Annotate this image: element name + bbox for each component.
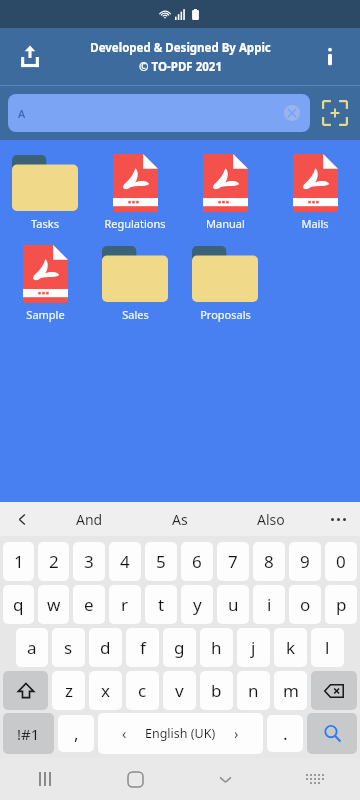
button[interactable]: Recents <box>0 758 90 800</box>
button[interactable]: Tasks <box>0 146 90 237</box>
staticText: j <box>251 636 256 659</box>
button[interactable]: Also <box>225 502 316 536</box>
button[interactable]: Search <box>307 713 357 754</box>
button[interactable]: Home <box>90 758 180 800</box>
button[interactable]: i <box>253 585 285 624</box>
staticText: !#1 <box>17 724 40 744</box>
button[interactable]: v <box>163 671 196 710</box>
button[interactable]: Proposals <box>180 237 270 328</box>
staticText: t <box>158 593 165 616</box>
button[interactable]: 7 <box>217 542 249 581</box>
staticText: v <box>175 679 184 702</box>
button[interactable]: d <box>89 628 122 667</box>
button[interactable]: z <box>52 671 85 710</box>
button[interactable]: Hide keyboard <box>180 758 270 800</box>
button[interactable]: Manual <box>180 146 270 237</box>
staticText: b <box>211 679 222 702</box>
button[interactable]: g <box>163 628 196 667</box>
staticText: z <box>65 679 73 702</box>
staticText: English (UK) <box>145 725 216 742</box>
button[interactable]: b <box>200 671 233 710</box>
button[interactable]: Previous suggestions <box>0 502 44 536</box>
staticText: g <box>174 636 185 659</box>
button[interactable]: 6 <box>181 542 213 581</box>
staticText: u <box>228 593 239 616</box>
button[interactable]: y <box>181 585 213 624</box>
staticText: Developed & Designed By Appic <box>90 40 271 56</box>
button[interactable]: Backspace <box>311 671 357 710</box>
staticText: 2 <box>49 550 59 573</box>
staticText: y <box>193 593 202 616</box>
staticText: q <box>13 593 24 616</box>
staticText: Proposals <box>200 307 251 322</box>
button[interactable]: s <box>52 628 85 667</box>
staticText: c <box>138 679 147 702</box>
staticText: ‹ <box>122 724 127 743</box>
staticText: m <box>283 679 299 702</box>
staticText: s <box>64 636 73 659</box>
button[interactable]: w <box>38 585 69 624</box>
button[interactable]: 5 <box>145 542 177 581</box>
button[interactable]: u <box>217 585 249 624</box>
button[interactable]: Regulations <box>90 146 180 237</box>
button[interactable]: A <box>8 94 310 132</box>
staticText: , <box>74 722 79 745</box>
staticText: w <box>47 593 61 616</box>
button[interactable]: 8 <box>253 542 285 581</box>
button[interactable]: !#1 <box>3 713 54 754</box>
button[interactable]: j <box>237 628 270 667</box>
staticText: o <box>300 593 311 616</box>
button[interactable]: Upload <box>8 35 52 79</box>
button[interactable]: m <box>274 671 307 710</box>
staticText: 6 <box>192 550 202 573</box>
button[interactable]: Mails <box>270 146 360 237</box>
button[interactable]: a <box>16 628 48 667</box>
staticText: And <box>76 510 103 529</box>
button[interactable]: As <box>134 502 225 536</box>
button[interactable]: Info <box>310 37 350 77</box>
button[interactable]: And <box>44 502 134 536</box>
button[interactable]: 9 <box>289 542 321 581</box>
button[interactable]: e <box>73 585 105 624</box>
button[interactable]: r <box>109 585 141 624</box>
button[interactable]: Shift <box>3 671 48 710</box>
button[interactable]: o <box>289 585 321 624</box>
button[interactable]: Switch keyboard <box>270 758 360 800</box>
button[interactable]: Sales <box>90 237 180 328</box>
button[interactable]: 4 <box>109 542 141 581</box>
staticText: 1 <box>14 550 24 573</box>
staticText: h <box>211 636 222 659</box>
button[interactable]: , <box>58 715 94 752</box>
button[interactable]: c <box>126 671 159 710</box>
button[interactable]: h <box>200 628 233 667</box>
staticText: © TO-PDF 2021 <box>139 59 222 75</box>
button[interactable]: 2 <box>38 542 69 581</box>
staticText: Manual <box>206 216 245 231</box>
button[interactable]: t <box>145 585 177 624</box>
staticText: Mails <box>301 216 329 231</box>
staticText: 7 <box>228 550 238 573</box>
staticText: Also <box>257 510 285 529</box>
button[interactable]: x <box>89 671 122 710</box>
staticText: x <box>101 679 110 702</box>
button[interactable]: 1 <box>3 542 34 581</box>
button[interactable]: n <box>237 671 270 710</box>
staticText: r <box>121 593 129 616</box>
button[interactable]: l <box>311 628 344 667</box>
button[interactable]: . <box>267 715 303 752</box>
staticText: Regulations <box>104 216 166 231</box>
button[interactable]: Sample <box>0 237 90 328</box>
staticText: A <box>18 106 26 121</box>
button[interactable]: ‹ <box>98 713 263 754</box>
button[interactable]: p <box>325 585 357 624</box>
staticText: e <box>84 593 94 616</box>
button[interactable]: f <box>126 628 159 667</box>
button[interactable]: 3 <box>73 542 105 581</box>
staticText: Sample <box>26 307 65 322</box>
staticText: › <box>234 724 239 743</box>
button[interactable]: q <box>3 585 34 624</box>
button[interactable]: k <box>274 628 307 667</box>
button[interactable]: Scan <box>318 96 352 130</box>
button[interactable]: 0 <box>325 542 357 581</box>
button[interactable]: More options <box>316 502 360 536</box>
